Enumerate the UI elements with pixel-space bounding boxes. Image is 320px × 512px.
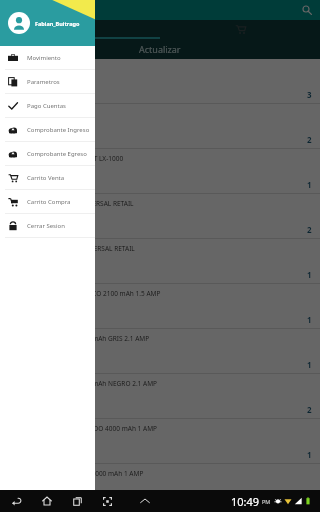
- staticText: Comprobante Ingreso: [27, 126, 90, 134]
- staticText: CARGADOR DE PARED UNIVERSAL RETAIL: [8, 199, 134, 208]
- button[interactable]: Pago Cuentas: [0, 94, 95, 117]
- button[interactable]: Comprobante Ingreso: [0, 118, 95, 141]
- button[interactable]: Open navigation drawer: [5, 3, 19, 17]
- staticText: CARGADOR PORTATIL 4000 mAh GRIS 2.1 AMP: [8, 334, 150, 343]
- staticText: Cerrar Sesion: [27, 222, 65, 230]
- staticText: UNIDADES: [8, 119, 41, 128]
- staticText: 1: [307, 314, 312, 325]
- staticText: 1: [307, 494, 312, 505]
- button[interactable]: Carrito Venta: [0, 166, 95, 189]
- button[interactable]: Actualizar: [0, 39, 320, 59]
- button[interactable]: CARGADOR PORTATIL BLANCO 2100 mAh 1.5 AM…: [0, 284, 320, 328]
- button[interactable]: Parametros: [0, 70, 95, 93]
- button[interactable]: CARGADOR PORTATIL DORADO 4000 mAh 1 AMP: [0, 419, 320, 463]
- button[interactable]: CARGADOR PORTATIL 4000 mAh GRIS 2.1 AMP: [0, 329, 320, 373]
- staticText: UNIDADES: [8, 164, 41, 173]
- staticText: CARGADOR PORTATIL DORADO 4000 mAh 1 AMP: [8, 424, 157, 433]
- staticText: 1: [307, 449, 312, 460]
- staticText: UNIDADES: [8, 209, 41, 218]
- staticText: Parametros: [27, 78, 60, 86]
- staticText: CARGADOR DE CARRO UNIVERSAL RETAIL: [8, 244, 135, 253]
- staticText: CARGADOR PORTATIL ORO 4000 mAh 1 AMP: [8, 469, 144, 478]
- button[interactable]: CABLE USB PARA CHEVROLET LX-1000: [0, 149, 320, 193]
- staticText: Pago Cuentas: [27, 102, 66, 110]
- button[interactable]: BATERIA RECARGABLE AA: [0, 104, 320, 148]
- staticText: BATERIA RECARGABLE AA: [8, 109, 86, 118]
- staticText: 1: [307, 179, 312, 190]
- staticText: 3: [307, 89, 312, 100]
- button[interactable]: Back: [8, 492, 26, 510]
- staticText: 10:49: [231, 494, 260, 509]
- staticText: Movimiento: [27, 54, 61, 62]
- staticText: Comprobante Egreso: [27, 150, 87, 158]
- button[interactable]: Recent apps: [68, 492, 86, 510]
- staticText: AUDIFONO MANOS LIBRES: [8, 64, 91, 73]
- staticText: UNIDADES: [8, 74, 41, 83]
- staticText: 2: [307, 134, 312, 145]
- staticText: 1: [307, 359, 312, 370]
- staticText: 1: [307, 269, 312, 280]
- staticText: PM: [262, 498, 271, 505]
- button[interactable]: Search: [299, 2, 315, 18]
- button[interactable]: CARGADOR DE PARED UNIVERSAL RETAIL: [0, 194, 320, 238]
- button[interactable]: Expand status bar: [136, 492, 154, 510]
- button[interactable]: Cerrar Sesion: [0, 214, 95, 237]
- button[interactable]: AUDIFONO MANOS LIBRES: [0, 59, 320, 103]
- button[interactable]: CARGADOR PORTATIL 4000 mAh NEGRO 2.1 AMP: [0, 374, 320, 418]
- staticText: Fabian_Buitrago: [35, 20, 80, 27]
- button[interactable]: Comprobante Egreso: [0, 142, 95, 165]
- staticText: Actualizar: [139, 43, 181, 55]
- button[interactable]: CARGADOR DE CARRO UNIVERSAL RETAIL: [0, 239, 320, 283]
- button[interactable]: CARGADOR PORTATIL ORO 4000 mAh 1 AMP: [0, 464, 320, 508]
- button[interactable]: Home: [38, 492, 56, 510]
- staticText: CABLE USB PARA CHEVROLET LX-1000: [8, 154, 124, 163]
- staticText: Carrito Compra: [27, 198, 71, 206]
- button[interactable]: Screenshot: [98, 492, 116, 510]
- button[interactable]: Movimiento: [0, 46, 95, 69]
- staticText: CARGADOR PORTATIL BLANCO 2100 mAh 1.5 AM…: [8, 289, 161, 298]
- staticText: Carrito Venta: [27, 174, 65, 182]
- button[interactable]: Carrito Compra: [0, 190, 95, 213]
- staticText: 2: [307, 224, 312, 235]
- staticText: CARGADOR PORTATIL 4000 mAh NEGRO 2.1 AMP: [8, 379, 158, 388]
- staticText: GestionApp: [24, 3, 80, 17]
- staticText: 2: [307, 404, 312, 415]
- button[interactable]: Products tab: [0, 20, 160, 39]
